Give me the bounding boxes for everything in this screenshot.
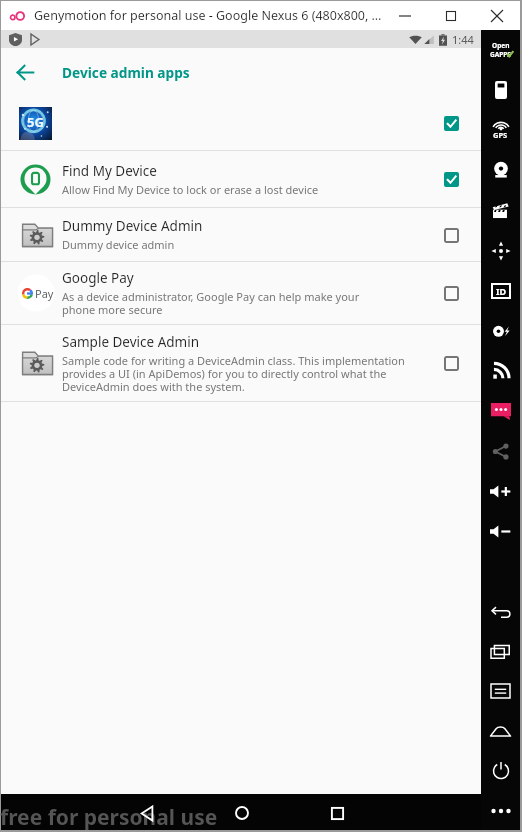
staticText: Allow Find My Device to lock or erase a …	[62, 182, 319, 197]
button[interactable]: Navigate up	[1, 48, 49, 96]
staticText: 5G	[27, 113, 44, 131]
staticText: Open	[492, 41, 510, 50]
button[interactable]: Minimize	[382, 1, 428, 30]
button[interactable]: Volume down	[481, 514, 520, 548]
button[interactable]: Sample Device Admin	[1, 325, 481, 401]
button[interactable]: Maximize	[428, 1, 474, 30]
staticText: Genymotion for personal use - Google Nex…	[34, 7, 382, 24]
button[interactable]: Recent apps	[320, 796, 354, 830]
button[interactable]: Checked	[436, 164, 466, 194]
staticText: Google Pay	[62, 269, 134, 287]
staticText: Dummy device admin	[62, 237, 175, 252]
button[interactable]: Find My Device	[1, 151, 481, 207]
button[interactable]: Accelerometer	[481, 234, 520, 268]
staticText: ID	[496, 285, 507, 297]
staticText: free for personal use	[0, 803, 218, 832]
button[interactable]: Power	[481, 754, 520, 788]
button[interactable]: Screen record	[481, 194, 520, 228]
button[interactable]: More options	[481, 794, 520, 828]
button[interactable]: Back	[481, 594, 520, 628]
staticText: Device admin apps	[62, 63, 190, 82]
button[interactable]: Recents	[481, 634, 520, 668]
button[interactable]: Identifiers	[481, 274, 520, 308]
button[interactable]: Network	[481, 354, 520, 388]
staticText: As a device administrator, Google Pay ca…	[62, 289, 360, 317]
button[interactable]: Dummy Device Admin	[1, 208, 481, 261]
staticText: Sample Device Admin	[62, 333, 200, 351]
button[interactable]: Disk IO	[481, 314, 520, 348]
staticText: Pay	[35, 286, 54, 301]
button[interactable]: Unchecked	[436, 220, 466, 250]
staticText: Sample code for writing a DeviceAdmin cl…	[62, 353, 405, 394]
button[interactable]: Home	[225, 796, 259, 830]
button[interactable]: SMS	[481, 394, 520, 428]
button[interactable]: Unchecked	[436, 348, 466, 378]
button[interactable]: Volume up	[481, 474, 520, 508]
button[interactable]: Battery	[481, 73, 520, 107]
button[interactable]: Checked	[436, 108, 466, 138]
button[interactable]: Menu	[481, 674, 520, 708]
button[interactable]: Home	[481, 714, 520, 748]
button[interactable]: Share	[481, 434, 520, 468]
button[interactable]: Pay	[1, 262, 481, 324]
staticText: Find My Device	[62, 162, 157, 180]
button[interactable]: Back	[130, 796, 164, 830]
button[interactable]: GPS	[481, 113, 520, 147]
staticText: GAPPS	[490, 50, 511, 59]
staticText: Dummy Device Admin	[62, 217, 203, 235]
button[interactable]: Camera	[481, 153, 520, 187]
button[interactable]: Open GApps	[481, 33, 520, 67]
button[interactable]: 5G	[1, 96, 481, 150]
staticText: GPS	[493, 130, 508, 140]
button[interactable]: Close	[474, 1, 520, 30]
staticText: 1:44	[452, 32, 474, 47]
button[interactable]: Unchecked	[436, 278, 466, 308]
